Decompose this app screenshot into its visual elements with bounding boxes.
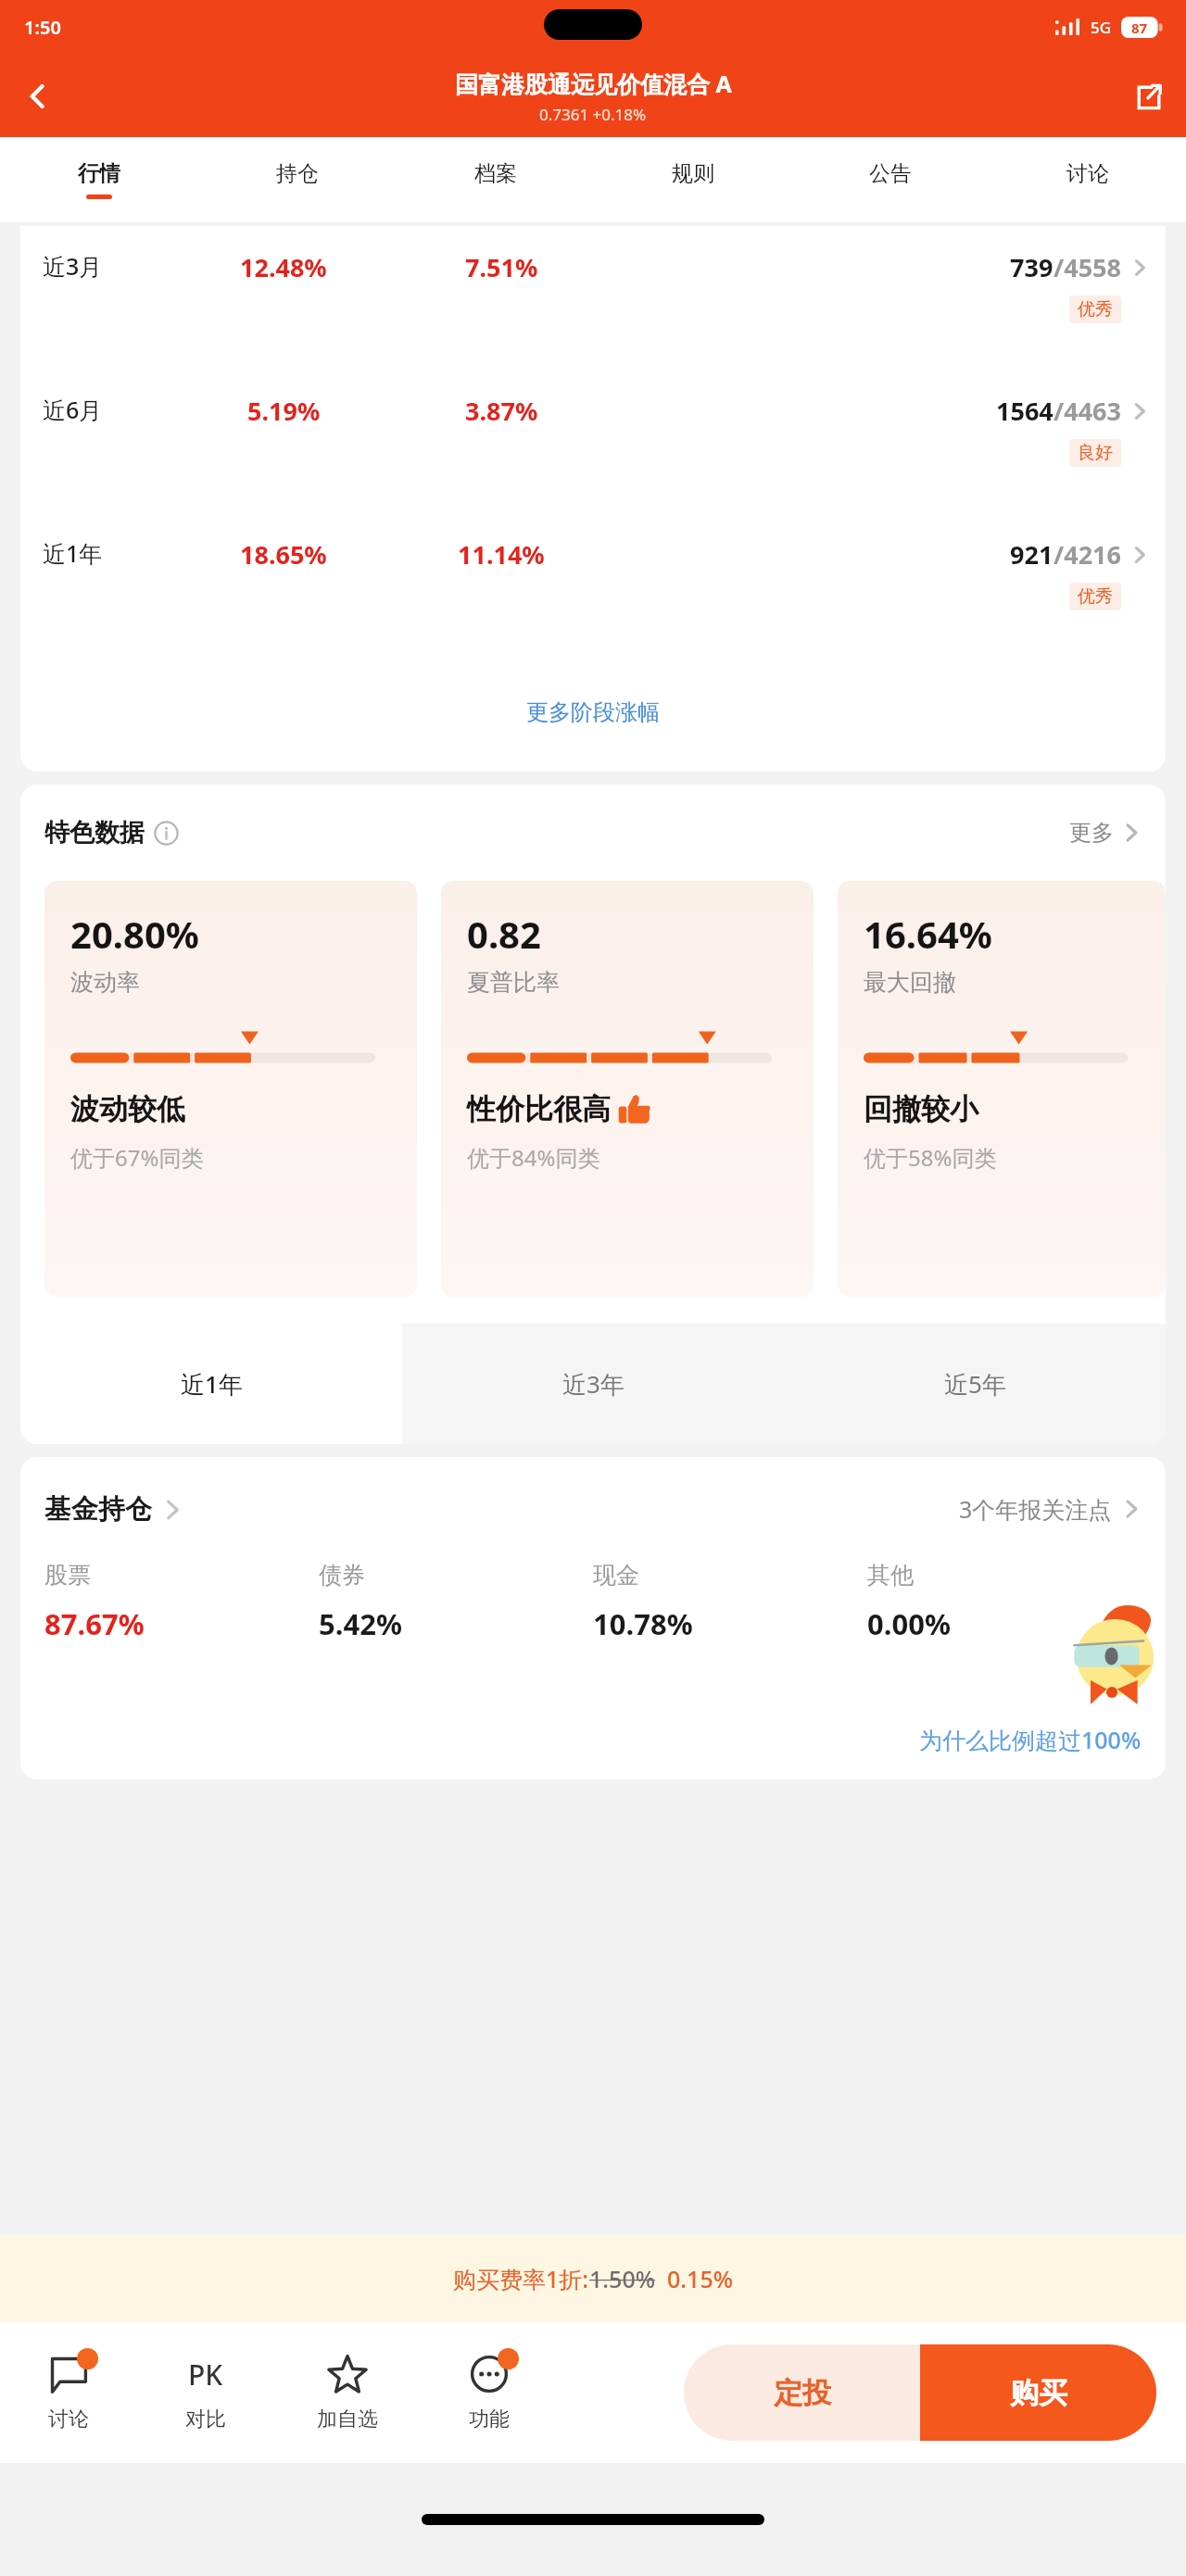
- staticText: 规则: [672, 160, 714, 187]
- staticText: 加自选: [317, 2406, 378, 2432]
- button[interactable]: 基金持仓: [44, 1492, 183, 1527]
- staticText: 现金: [593, 1561, 639, 1590]
- staticText: 波动率: [70, 968, 140, 997]
- staticText: 3个年报关注点: [959, 1493, 1112, 1525]
- button[interactable]: 近5年: [784, 1324, 1166, 1444]
- staticText: 11.14%: [458, 537, 545, 572]
- button[interactable]: 公告: [791, 137, 989, 222]
- staticText: PK: [188, 2356, 223, 2394]
- button[interactable]: 0.82: [441, 881, 814, 1297]
- staticText: 3.87%: [465, 394, 538, 428]
- button[interactable]: 近1年: [20, 1324, 402, 1444]
- staticText: 0.00%: [867, 1604, 951, 1643]
- button[interactable]: 更多阶段涨幅: [20, 662, 1166, 762]
- button[interactable]: 定投: [684, 2344, 920, 2441]
- staticText: 近6月: [43, 394, 172, 425]
- staticText: 87: [1131, 19, 1148, 37]
- staticText: 夏普比率: [467, 968, 560, 997]
- staticText: 优秀: [1078, 298, 1113, 320]
- staticText: 87.67%: [44, 1604, 145, 1643]
- staticText: 1:50: [24, 15, 61, 40]
- staticText: 优于58%同类: [864, 1142, 997, 1173]
- staticText: 性价比很高: [467, 1091, 611, 1127]
- staticText: 其他: [867, 1561, 914, 1590]
- button[interactable]: 近3月: [20, 232, 1166, 375]
- staticText: 持仓: [276, 160, 319, 187]
- staticText: 购买费率1折:: [453, 2263, 589, 2294]
- staticText: 对比: [185, 2406, 226, 2432]
- staticText: 定投: [774, 2375, 831, 2411]
- button[interactable]: 近3年: [402, 1324, 784, 1444]
- button[interactable]: 行情: [0, 137, 198, 222]
- staticText: 0.15%: [667, 2263, 734, 2294]
- button[interactable]: 功能: [421, 2322, 558, 2463]
- button[interactable]: 3个年报关注点: [959, 1493, 1142, 1525]
- staticText: 购买: [1010, 2375, 1067, 2411]
- staticText: 近1年: [43, 537, 172, 569]
- staticText: 债券: [319, 1561, 365, 1590]
- button[interactable]: 档案: [397, 137, 594, 222]
- staticText: /4558: [1054, 250, 1121, 284]
- button[interactable]: Back: [17, 75, 59, 118]
- staticText: 基金持仓: [44, 1492, 152, 1527]
- staticText: 股票: [44, 1561, 91, 1590]
- staticText: 921: [1010, 537, 1054, 572]
- staticText: 739: [1010, 250, 1054, 284]
- staticText: 波动较低: [70, 1091, 185, 1127]
- staticText: /4216: [1054, 537, 1121, 572]
- staticText: 讨论: [48, 2406, 89, 2432]
- staticText: /4463: [1054, 394, 1121, 428]
- staticText: 0.7361 +0.18%: [539, 104, 647, 125]
- staticText: 5G: [1091, 17, 1112, 38]
- staticText: 近3年: [562, 1367, 625, 1401]
- staticText: 近3月: [43, 250, 172, 282]
- staticText: 7.51%: [465, 250, 538, 284]
- button[interactable]: Share: [1127, 75, 1169, 118]
- staticText: 1.50%: [589, 2263, 656, 2294]
- staticText: 优于84%同类: [467, 1142, 600, 1173]
- staticText: 档案: [474, 160, 517, 187]
- staticText: 优于67%同类: [70, 1142, 204, 1173]
- staticText: 功能: [469, 2406, 510, 2432]
- staticText: 优秀: [1078, 585, 1113, 608]
- staticText: 更多阶段涨幅: [526, 698, 660, 726]
- staticText: 1564: [996, 394, 1054, 428]
- staticText: 5.42%: [319, 1604, 402, 1643]
- button[interactable]: 更多: [1069, 819, 1142, 847]
- staticText: 0.82: [467, 909, 541, 959]
- staticText: 回撤较小: [864, 1091, 978, 1127]
- button[interactable]: 持仓: [198, 137, 397, 222]
- button[interactable]: 加自选: [274, 2322, 421, 2463]
- staticText: 国富港股通远见价值混合 A: [455, 68, 732, 99]
- staticText: 最大回撤: [864, 968, 956, 997]
- staticText: 12.48%: [240, 250, 327, 284]
- button[interactable]: 讨论: [989, 137, 1186, 222]
- button[interactable]: 近6月: [20, 375, 1166, 519]
- button[interactable]: 规则: [594, 137, 791, 222]
- staticText: 为什么比例超过100%: [919, 1724, 1142, 1755]
- button[interactable]: 16.64%: [838, 881, 1166, 1297]
- staticText: 20.80%: [70, 909, 199, 959]
- staticText: 近1年: [181, 1367, 243, 1401]
- staticText: 行情: [78, 160, 120, 187]
- staticText: 近5年: [944, 1367, 1006, 1401]
- staticText: 公告: [869, 160, 912, 187]
- button[interactable]: 近1年: [20, 519, 1166, 662]
- button[interactable]: PK: [137, 2322, 274, 2463]
- staticText: 18.65%: [240, 537, 327, 572]
- button[interactable]: 20.80%: [44, 881, 417, 1297]
- button[interactable]: 购买: [920, 2344, 1156, 2441]
- staticText: 特色数据: [44, 817, 145, 848]
- staticText: 5.19%: [247, 394, 321, 428]
- button[interactable]: 讨论: [0, 2322, 137, 2463]
- staticText: 更多: [1069, 819, 1114, 847]
- staticText: 良好: [1078, 442, 1113, 464]
- staticText: 讨论: [1066, 160, 1109, 187]
- staticText: 10.78%: [593, 1604, 693, 1643]
- button[interactable]: 为什么比例超过100%: [919, 1724, 1142, 1755]
- staticText: 16.64%: [864, 909, 992, 959]
